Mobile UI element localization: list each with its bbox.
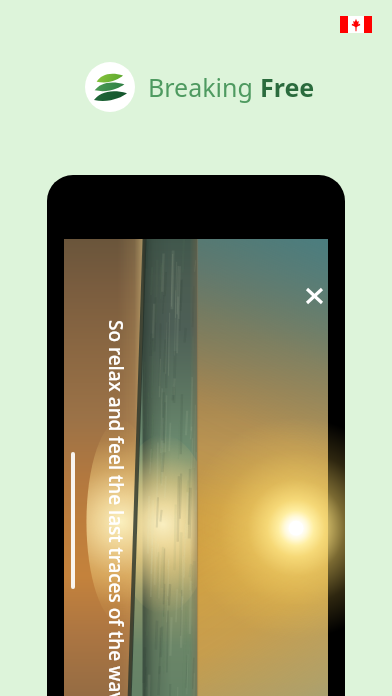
staticText: So relax and feel the last traces of the…: [103, 320, 129, 696]
staticText: Breaking: [148, 70, 260, 104]
button[interactable]: Close: [296, 278, 332, 314]
staticText: Free: [260, 70, 315, 104]
